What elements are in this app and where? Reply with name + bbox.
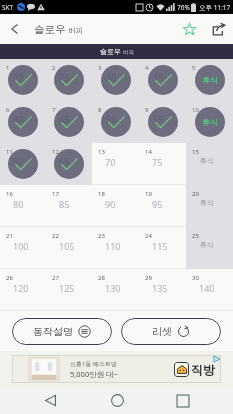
staticText: 3 [98, 64, 102, 72]
button[interactable]: 27 [46, 269, 92, 311]
staticText: 130 [105, 282, 121, 294]
button[interactable]: 6 [0, 101, 46, 143]
staticText: 10 [192, 106, 199, 114]
button[interactable]: 14 [139, 143, 186, 185]
staticText: 20 [13, 71, 24, 83]
staticText: 95 [152, 198, 163, 210]
staticText: 신흥1동 베스트방 [70, 360, 117, 368]
staticText: 55 [153, 113, 164, 125]
button[interactable]: 28 [92, 269, 139, 311]
staticText: 27 [52, 274, 59, 282]
button[interactable]: 12 [46, 143, 92, 185]
button[interactable]: 26 [0, 269, 46, 311]
button[interactable]: Back [0, 14, 29, 44]
staticText: 28 [98, 274, 105, 282]
staticText: 85 [59, 198, 70, 210]
button[interactable]: 18 [92, 185, 139, 227]
button[interactable]: 22 [46, 227, 92, 269]
staticText: 12 [52, 148, 59, 156]
button[interactable]: 4 [139, 59, 186, 101]
staticText: 70 [105, 156, 116, 168]
staticText: 22 [52, 232, 59, 240]
button[interactable]: 7 [46, 101, 92, 143]
staticText: 90 [105, 198, 116, 210]
staticText: 버피 [123, 49, 134, 56]
staticText: 24 [145, 232, 152, 240]
button[interactable]: 23 [92, 227, 139, 269]
staticText: 동작설명 [33, 325, 73, 338]
button[interactable]: Recents [166, 387, 200, 414]
button[interactable]: 30 [186, 269, 233, 311]
staticText: 115 [152, 240, 168, 252]
staticText: 50 [106, 113, 117, 125]
button[interactable]: 5 [186, 59, 233, 101]
staticText: 30 [192, 274, 199, 282]
staticText: 11 [6, 148, 13, 156]
button[interactable]: 11 [0, 143, 46, 185]
staticText: 21 [6, 232, 13, 240]
staticText: 76% [177, 3, 190, 12]
button[interactable]: 16 [0, 185, 46, 227]
staticText: 75 [152, 156, 163, 168]
staticText: 65 [59, 155, 70, 167]
staticText: 15 [192, 148, 199, 156]
button[interactable]: 10 [186, 101, 233, 143]
button[interactable]: 2 [46, 59, 92, 101]
staticText: 7 [52, 106, 56, 114]
staticText: 25 [59, 71, 70, 83]
button[interactable]: 13 [92, 143, 139, 185]
button[interactable]: Favorite [175, 14, 203, 44]
staticText: 4 [145, 64, 149, 72]
button[interactable]: 15 [186, 143, 233, 185]
button[interactable]: 동작설명 [12, 318, 112, 345]
staticText: 45 [59, 113, 70, 125]
button[interactable]: 8 [92, 101, 139, 143]
staticText: 8 [98, 106, 102, 114]
staticText: 17 [52, 190, 59, 198]
staticText: 23 [98, 232, 105, 240]
button[interactable]: 신흥1동 베스트방 [12, 355, 221, 383]
staticText: 19 [145, 190, 152, 198]
staticText: 120 [13, 282, 29, 294]
staticText: 110 [105, 240, 121, 252]
staticText: 140 [199, 282, 215, 294]
staticText: 14 [145, 148, 152, 156]
staticText: 18 [98, 190, 105, 198]
staticText: 5,000만원 대~ [70, 369, 118, 379]
staticText: 9 [145, 106, 149, 114]
button[interactable]: 29 [139, 269, 186, 311]
staticText: 오후 11:17 [199, 3, 231, 12]
staticText: 20 [192, 190, 199, 198]
staticText: SKT [2, 3, 14, 12]
button[interactable]: Back [33, 387, 67, 414]
button[interactable]: 19 [139, 185, 186, 227]
staticText: 135 [152, 282, 168, 294]
button[interactable]: 9 [139, 101, 186, 143]
button[interactable]: Share [203, 14, 233, 44]
button[interactable]: 20 [186, 185, 233, 227]
staticText: 5 [192, 64, 196, 72]
staticText: 125 [59, 282, 75, 294]
button[interactable]: 21 [0, 227, 46, 269]
staticText: 25 [192, 232, 199, 240]
staticText: 13 [98, 148, 105, 156]
staticText: 2 [52, 64, 56, 72]
staticText: 26 [6, 274, 13, 282]
staticText: 29 [145, 274, 152, 282]
button[interactable]: 17 [46, 185, 92, 227]
button[interactable]: 24 [139, 227, 186, 269]
staticText: 80 [13, 198, 24, 210]
staticText: 리셋 [152, 325, 172, 338]
staticText: 버피 [68, 26, 83, 35]
staticText: 35 [153, 71, 164, 83]
staticText: 16 [6, 190, 13, 198]
button[interactable]: 3 [92, 59, 139, 101]
staticText: 30 [106, 71, 117, 83]
staticText: 휴식 [202, 75, 218, 85]
button[interactable]: 1 [0, 59, 46, 101]
button[interactable]: 리셋 [121, 318, 221, 345]
staticText: 슬로우 [100, 47, 121, 56]
button[interactable]: 25 [186, 227, 233, 269]
staticText: 슬로우 [34, 23, 66, 36]
button[interactable]: Home [100, 387, 134, 414]
